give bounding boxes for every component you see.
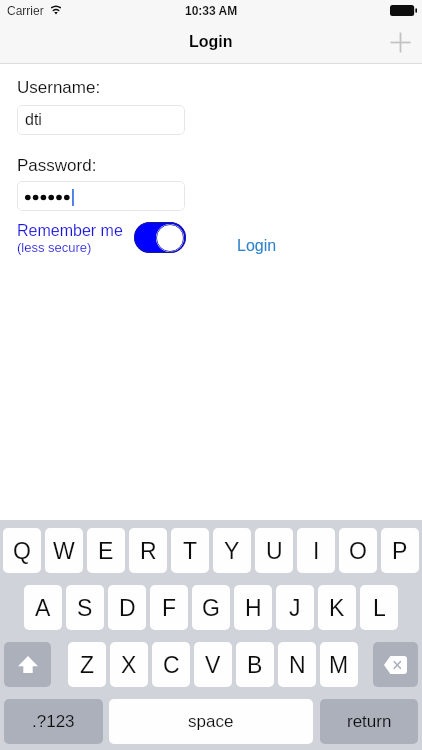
staticText: 10:33 AM	[185, 4, 238, 17]
button[interactable]: F	[150, 585, 188, 630]
button[interactable]: B	[236, 642, 274, 687]
button[interactable]: P	[381, 528, 419, 573]
staticText: M	[329, 652, 349, 678]
staticText: Password:	[17, 156, 97, 175]
staticText: B	[247, 652, 263, 678]
button[interactable]: A	[24, 585, 62, 630]
staticText: I	[313, 538, 320, 564]
button[interactable]: S	[66, 585, 104, 630]
button[interactable]: .?123	[4, 699, 103, 744]
button[interactable]: Remember me toggle	[134, 222, 186, 253]
staticText: G	[202, 595, 220, 621]
staticText: L	[373, 595, 386, 621]
staticText: T	[183, 538, 198, 564]
staticText: E	[98, 538, 114, 564]
button[interactable]: R	[129, 528, 167, 573]
staticText: P	[392, 538, 408, 564]
staticText: return	[347, 712, 392, 731]
button[interactable]: Y	[213, 528, 251, 573]
button[interactable]: U	[255, 528, 293, 573]
staticText: U	[266, 538, 283, 564]
staticText: D	[119, 595, 136, 621]
staticText: Login	[189, 33, 233, 51]
button[interactable]	[17, 181, 185, 211]
staticText: C	[163, 652, 180, 678]
staticText: O	[349, 538, 367, 564]
staticText: S	[77, 595, 93, 621]
button[interactable]: dti	[17, 105, 185, 135]
button[interactable]: I	[297, 528, 335, 573]
button[interactable]: return	[320, 699, 418, 744]
button[interactable]: V	[194, 642, 232, 687]
button[interactable]: Login	[237, 237, 277, 255]
button[interactable]: L	[360, 585, 398, 630]
staticText: Z	[80, 652, 95, 678]
staticText: dti	[25, 111, 42, 129]
staticText: Carrier	[7, 4, 44, 17]
button[interactable]: G	[192, 585, 230, 630]
staticText: Y	[224, 538, 240, 564]
staticText: W	[53, 538, 75, 564]
button[interactable]: K	[318, 585, 356, 630]
staticText: X	[121, 652, 137, 678]
staticText: F	[162, 595, 177, 621]
staticText: H	[245, 595, 262, 621]
button[interactable]: Z	[68, 642, 106, 687]
button[interactable]: E	[87, 528, 125, 573]
button[interactable]: Shift	[4, 642, 51, 687]
staticText: Remember me	[17, 222, 123, 240]
staticText: A	[35, 595, 51, 621]
staticText: space	[188, 712, 234, 731]
button[interactable]: Q	[3, 528, 41, 573]
button[interactable]: D	[108, 585, 146, 630]
staticText: Username:	[17, 78, 101, 97]
button[interactable]: X	[110, 642, 148, 687]
staticText: R	[140, 538, 157, 564]
button[interactable]: H	[234, 585, 272, 630]
button[interactable]: W	[45, 528, 83, 573]
staticText: J	[289, 595, 301, 621]
button[interactable]: Remember me	[17, 222, 123, 255]
button[interactable]: C	[152, 642, 190, 687]
staticText: Q	[13, 538, 31, 564]
button[interactable]: space	[109, 699, 313, 744]
staticText: (less secure)	[17, 240, 92, 255]
button[interactable]: Backspace	[373, 642, 418, 687]
staticText: K	[329, 595, 345, 621]
button[interactable]: Add	[378, 20, 422, 64]
button[interactable]: N	[278, 642, 316, 687]
staticText: V	[205, 652, 221, 678]
other: Battery	[390, 5, 417, 16]
button[interactable]: J	[276, 585, 314, 630]
staticText: Login	[237, 237, 277, 255]
button[interactable]: O	[339, 528, 377, 573]
button[interactable]: T	[171, 528, 209, 573]
staticText: .?123	[32, 712, 75, 731]
staticText: N	[289, 652, 306, 678]
button[interactable]: M	[320, 642, 358, 687]
